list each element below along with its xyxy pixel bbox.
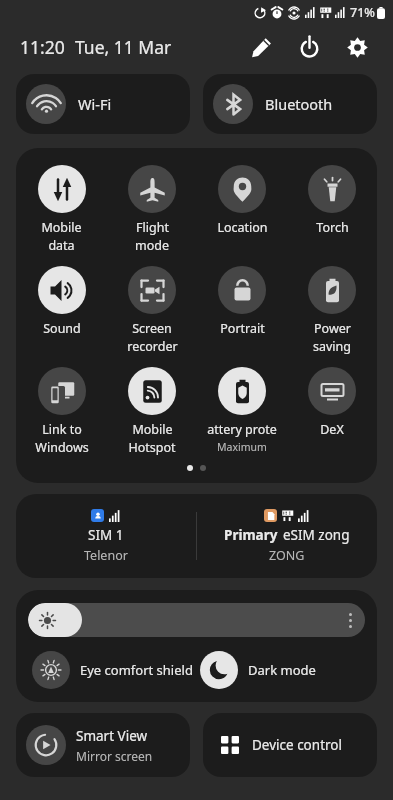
staticText: saving bbox=[313, 338, 351, 355]
button[interactable]: Bluetooth bbox=[203, 74, 377, 134]
button[interactable]: Power bbox=[287, 265, 377, 356]
staticText: Primary bbox=[224, 526, 278, 544]
staticText: Maximum bbox=[217, 440, 267, 454]
button[interactable]: Settings bbox=[341, 31, 373, 63]
button[interactable]: Dark mode bbox=[196, 651, 365, 689]
button[interactable]: Wi-Fi bbox=[16, 74, 190, 134]
staticText: mode bbox=[135, 237, 169, 254]
button[interactable]: Eye comfort shield bbox=[28, 651, 196, 689]
staticText: Hotspot bbox=[128, 439, 176, 456]
staticText: Power bbox=[314, 320, 351, 337]
button[interactable]: Sound bbox=[16, 265, 107, 338]
staticText: attery prote bbox=[207, 421, 277, 438]
staticText: 11:20 bbox=[20, 35, 65, 59]
button[interactable]: Link to bbox=[16, 366, 107, 457]
staticText: Eye comfort shield bbox=[80, 661, 193, 679]
staticText: Link to bbox=[42, 421, 82, 438]
button[interactable]: Device control bbox=[203, 713, 377, 777]
staticText: Device control bbox=[252, 736, 342, 754]
staticText: Telenor bbox=[84, 547, 128, 564]
button[interactable]: Screen bbox=[107, 265, 197, 356]
staticText: Bluetooth bbox=[265, 94, 333, 114]
button[interactable]: Portrait bbox=[197, 265, 287, 338]
button[interactable]: Edit bbox=[245, 31, 277, 63]
button[interactable]: SIM 1 bbox=[16, 494, 377, 578]
staticText: Dark mode bbox=[248, 661, 316, 679]
staticText: eSIM zong bbox=[283, 526, 350, 544]
staticText: Portrait bbox=[220, 320, 265, 337]
button[interactable]: Power bbox=[293, 31, 325, 63]
button[interactable]: attery prote bbox=[197, 366, 287, 455]
staticText: Flight bbox=[136, 219, 169, 236]
staticText: Mirror screen bbox=[76, 748, 153, 764]
button[interactable]: Smart View bbox=[16, 713, 190, 777]
staticText: Location bbox=[217, 219, 268, 236]
staticText: recorder bbox=[127, 338, 178, 355]
staticText: 71% bbox=[350, 4, 375, 21]
staticText: Wi-Fi bbox=[78, 94, 112, 114]
button[interactable]: Brightness bbox=[28, 603, 365, 637]
button[interactable]: Torch bbox=[287, 164, 377, 237]
staticText: Torch bbox=[316, 219, 349, 236]
button[interactable]: Flight bbox=[107, 164, 197, 255]
staticText: Screen bbox=[132, 320, 172, 337]
staticText: Smart View bbox=[76, 727, 148, 745]
staticText: Sound bbox=[43, 320, 81, 337]
staticText: Windows bbox=[35, 439, 89, 456]
button[interactable]: Mobile bbox=[16, 164, 107, 255]
staticText: Tue, 11 Mar bbox=[75, 35, 172, 59]
staticText: DeX bbox=[320, 421, 344, 438]
button[interactable]: Location bbox=[197, 164, 287, 237]
staticText: SIM 1 bbox=[88, 526, 124, 544]
button[interactable]: DeX bbox=[287, 366, 377, 439]
staticText: Mobile bbox=[41, 219, 82, 236]
staticText: data bbox=[48, 237, 75, 254]
button[interactable]: Mobile bbox=[107, 366, 197, 457]
staticText: Mobile bbox=[132, 421, 173, 438]
staticText: ZONG bbox=[269, 547, 305, 564]
